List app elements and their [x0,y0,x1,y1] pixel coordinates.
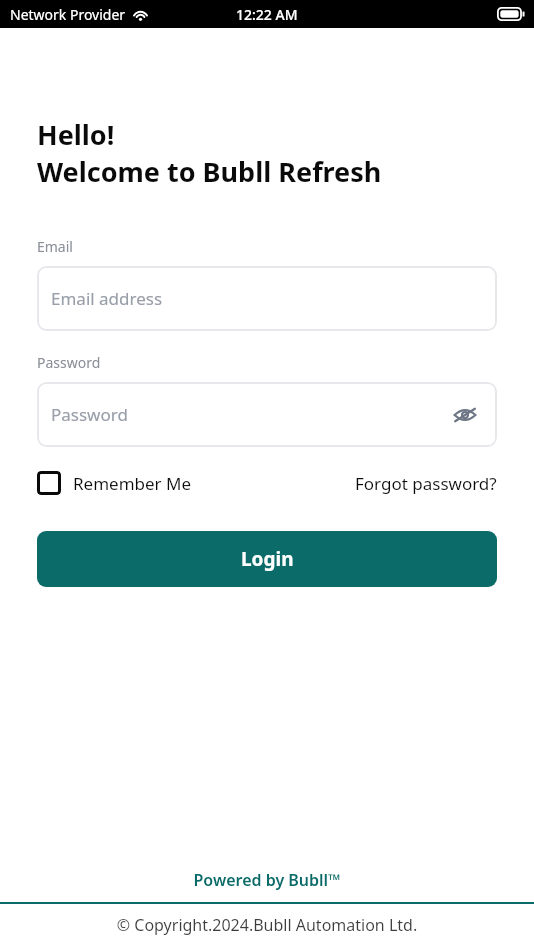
staticText: Email [37,237,73,256]
staticText: Powered by Bubll™ [0,869,534,891]
staticText: Password [51,403,128,426]
staticText: 12:22 AM [236,5,298,24]
button[interactable]: Forgot password? [355,472,497,495]
staticText: Email address [51,287,163,310]
button[interactable]: Show password [449,399,481,431]
staticText: © Copyright.2024.Bubll Automation Ltd. [0,914,534,936]
staticText: Welcome to Bubll Refresh [37,153,382,190]
button[interactable]: Login [37,531,497,587]
staticText: Network Provider [10,5,126,24]
button[interactable]: Password [37,382,497,447]
staticText: Login [241,546,294,572]
button[interactable]: Remember Me [37,471,192,495]
staticText: Hello! [37,116,115,153]
staticText: Remember Me [73,472,192,495]
button[interactable]: Email address [37,266,497,331]
staticText: Password [37,353,101,372]
